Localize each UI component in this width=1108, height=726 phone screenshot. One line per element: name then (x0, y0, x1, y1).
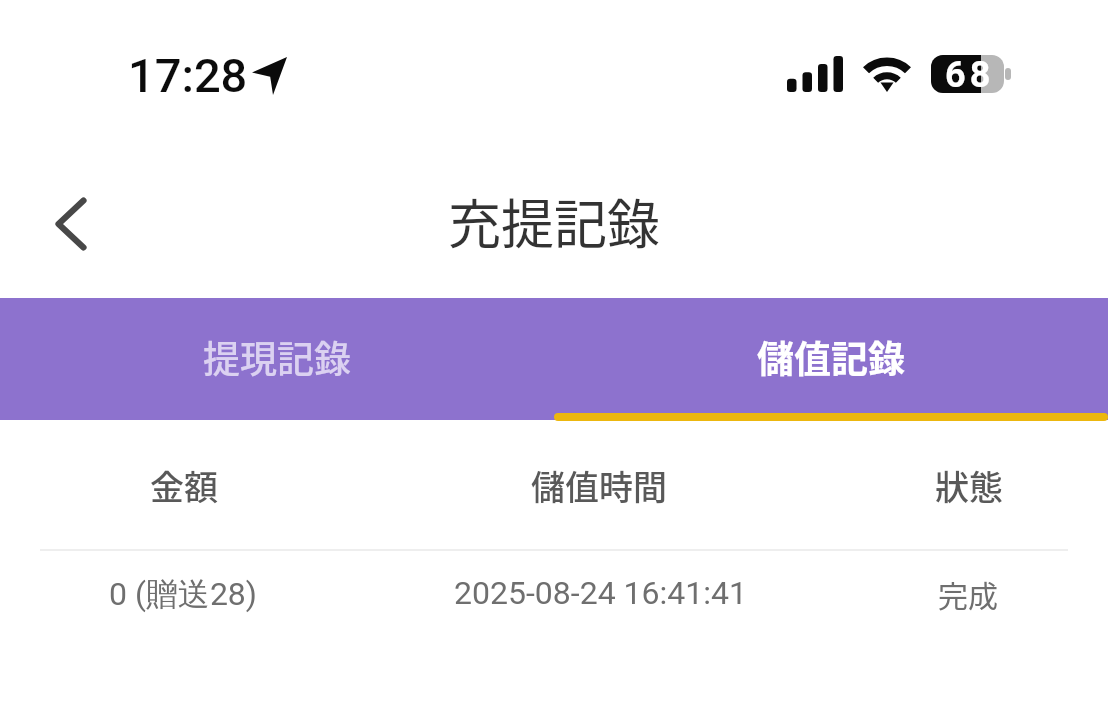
staticText: 68 (945, 55, 995, 92)
button[interactable]: Back (27, 180, 115, 268)
other: Location active (252, 56, 287, 95)
button[interactable]: 提現記錄 (0, 298, 554, 420)
staticText: 儲值記錄 (757, 330, 905, 384)
staticText: 充提記錄 (448, 183, 660, 260)
staticText: 儲值時間 (531, 461, 667, 510)
button[interactable]: 0 (贈送28) (0, 551, 1108, 639)
staticText: 2025-08-24 16:41:41 (454, 574, 747, 612)
other: Cellular signal (787, 56, 844, 92)
staticText: 金額 (150, 461, 218, 510)
staticText: 提現記錄 (203, 330, 351, 384)
staticText: 17:28 (128, 48, 248, 96)
staticText: 狀態 (935, 461, 1003, 510)
other: Wi-Fi (862, 55, 912, 92)
button[interactable]: 儲值記錄 (554, 298, 1108, 420)
staticText: 完成 (938, 572, 998, 615)
staticText: 0 (贈送28) (109, 574, 257, 614)
